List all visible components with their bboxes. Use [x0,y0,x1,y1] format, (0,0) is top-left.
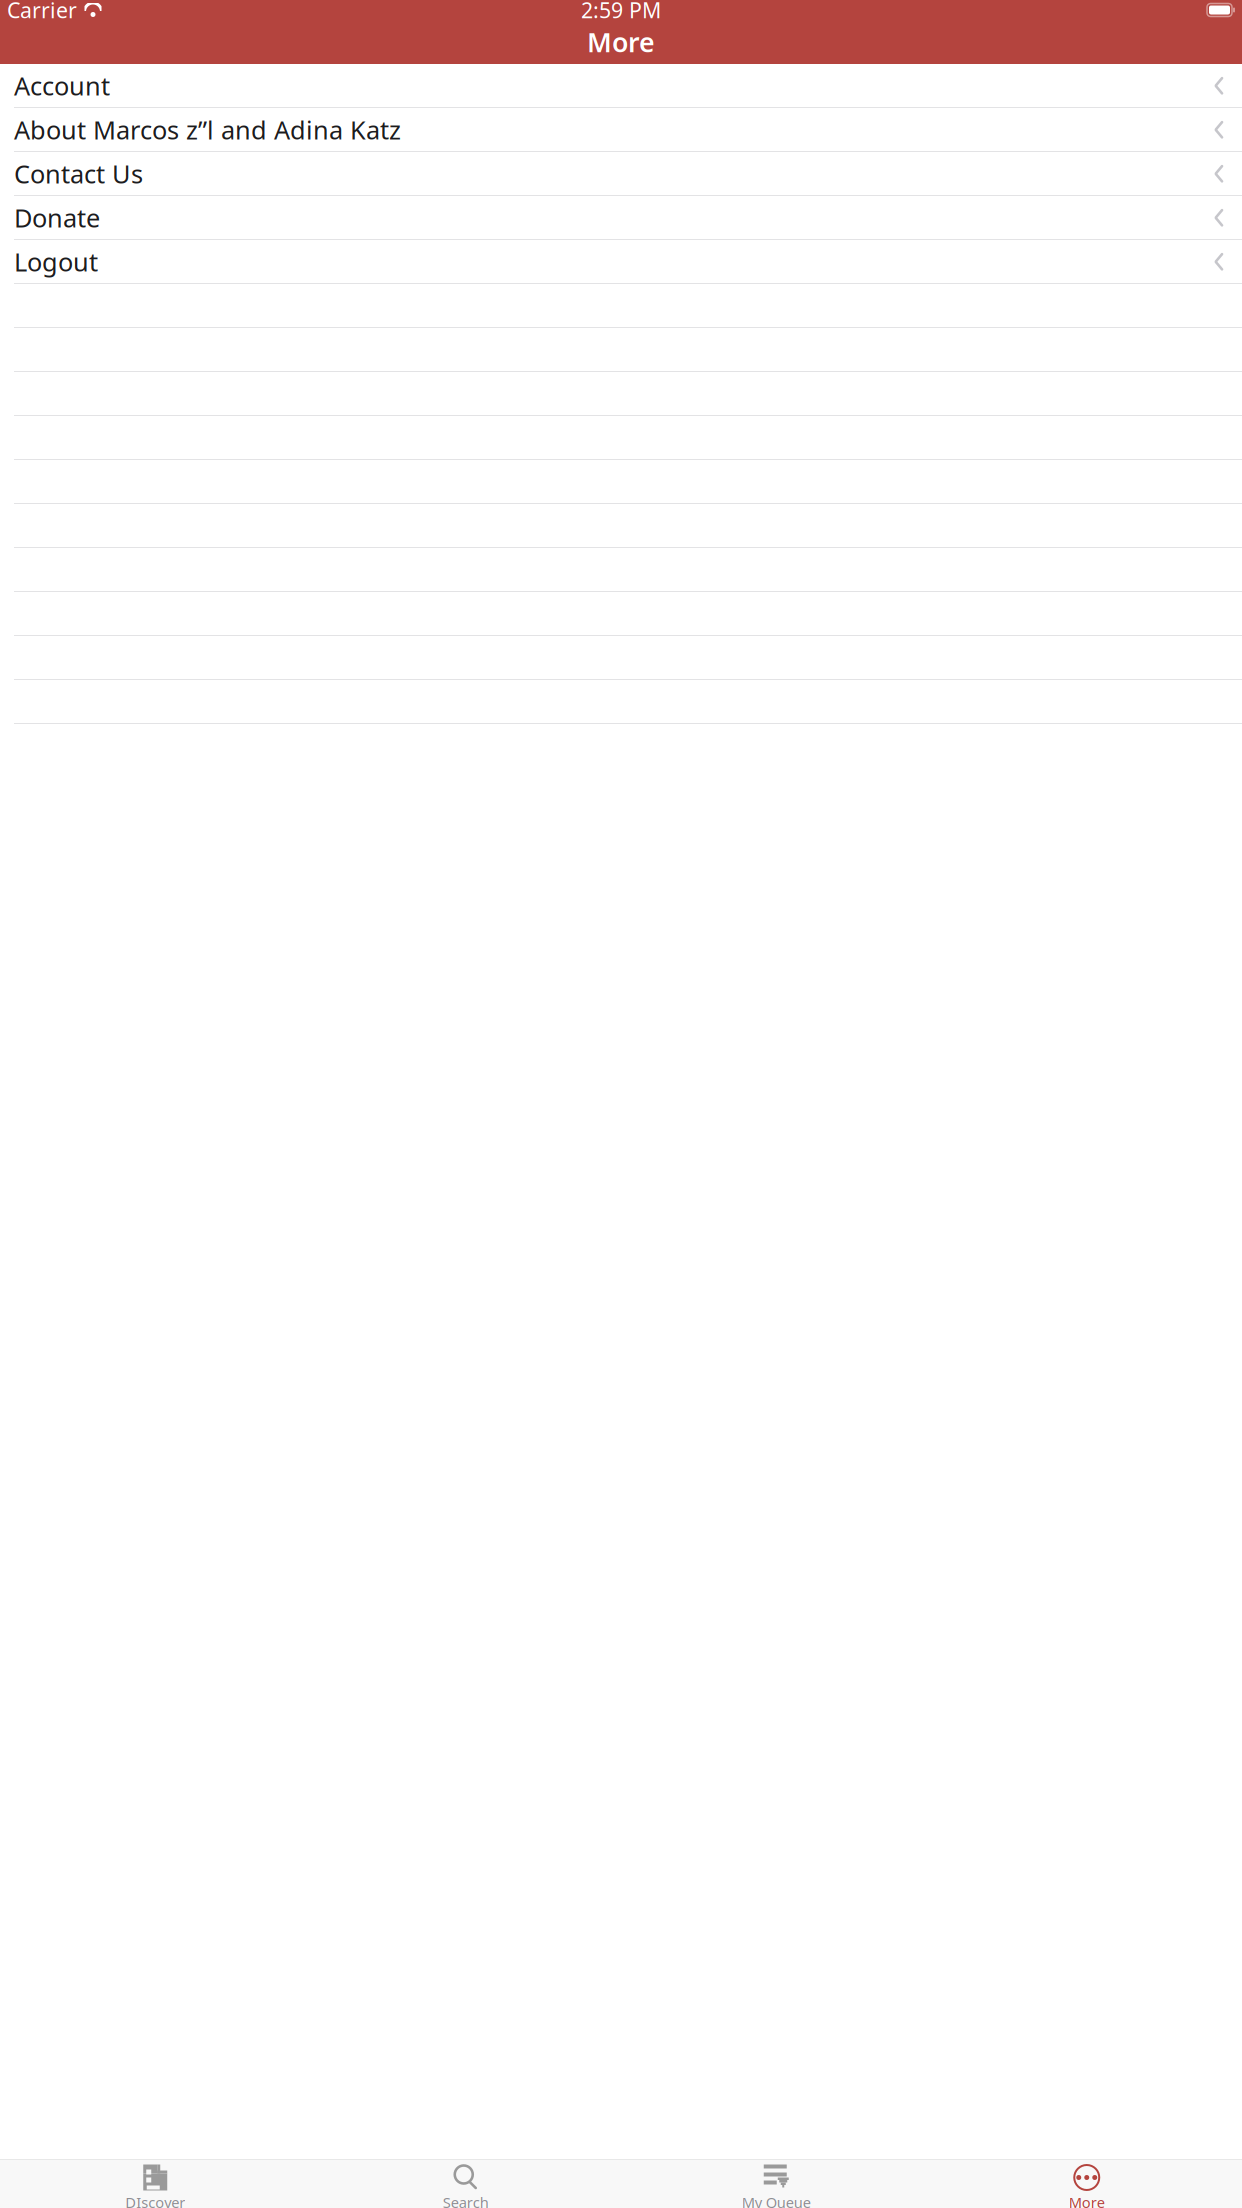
button[interactable]: Donate [0,196,1242,240]
staticText: Account [14,69,110,102]
staticText: My Queue [742,2192,811,2208]
staticText: Carrier [7,0,77,24]
staticText: Logout [14,245,98,278]
staticText: DIscover [125,2192,185,2208]
button[interactable]: More [931,2159,1242,2208]
button[interactable]: Account [0,64,1242,108]
staticText: 2:59 PM [581,0,661,24]
button[interactable]: Logout [0,240,1242,284]
staticText: More [587,24,655,60]
button[interactable]: About Marcos z”l and Adina Katz [0,108,1242,152]
staticText: Contact Us [14,157,143,190]
staticText: Search [443,2192,489,2208]
button[interactable]: DIscover [0,2159,310,2208]
button[interactable]: My Queue [621,2159,931,2208]
staticText: About Marcos z”l and Adina Katz [14,113,401,146]
button[interactable]: Search [310,2159,621,2208]
button[interactable]: Contact Us [0,152,1242,196]
staticText: Donate [14,201,100,234]
staticText: More [1069,2192,1105,2208]
